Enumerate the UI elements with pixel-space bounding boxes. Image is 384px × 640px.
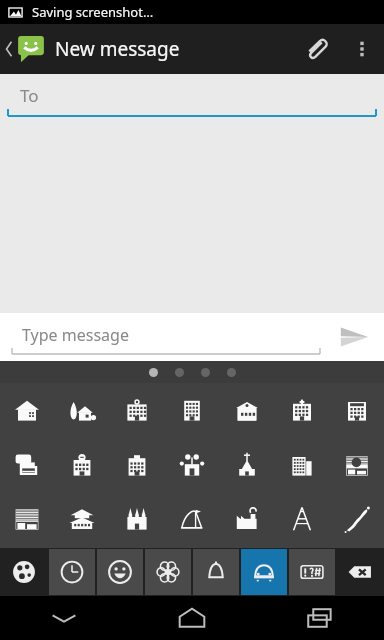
button[interactable]: Emoji 12 — [274, 440, 329, 492]
button[interactable]: Objects — [193, 549, 239, 595]
button[interactable]: Emoji 9 — [109, 440, 164, 492]
button[interactable]: Emoji 6 — [329, 385, 384, 437]
staticText: Type message — [22, 324, 129, 346]
button[interactable]: Emoji 4 — [219, 385, 274, 437]
button[interactable]: Emoji 11 — [219, 440, 274, 492]
button[interactable]: More options — [340, 24, 384, 74]
button[interactable]: Emoji 13 — [329, 440, 384, 492]
button[interactable]: Emoji 19 — [274, 494, 329, 546]
button[interactable]: Emoji 8 — [54, 440, 109, 492]
button[interactable]: Type message — [0, 313, 324, 361]
button[interactable]: Emoji 7 — [0, 440, 54, 492]
staticText: Saving screenshot… — [32, 3, 154, 21]
staticText: To — [20, 84, 39, 107]
button[interactable]: Emoji 3 — [164, 385, 219, 437]
button[interactable]: Back — [0, 24, 180, 74]
button[interactable]: Delete — [337, 549, 383, 595]
button[interactable]: Emoji 1 — [54, 385, 109, 437]
staticText: New message — [55, 36, 180, 62]
button[interactable]: Emoji 5 — [274, 385, 329, 437]
button[interactable]: To — [0, 74, 384, 120]
button[interactable]: Emoji 2 — [109, 385, 164, 437]
button[interactable]: Emoji 10 — [164, 440, 219, 492]
button[interactable]: Emoticons — [97, 549, 143, 595]
button[interactable]: Emoji 18 — [219, 494, 274, 546]
button[interactable]: Emoji 16 — [109, 494, 164, 546]
button[interactable]: Send — [324, 313, 384, 361]
button[interactable]: Emoji 20 — [329, 494, 384, 546]
button[interactable]: Emoji 14 — [0, 494, 54, 546]
button[interactable]: Recent — [49, 549, 95, 595]
button[interactable]: Emoji 15 — [54, 494, 109, 546]
button[interactable]: Places — [241, 549, 287, 595]
button[interactable]: Emoji 17 — [164, 494, 219, 546]
button[interactable]: Nature — [145, 549, 191, 595]
button[interactable]: Language — [1, 549, 47, 595]
button[interactable]: Hide keyboard — [0, 596, 128, 640]
other: Back — [4, 40, 14, 58]
button[interactable]: Home — [128, 596, 256, 640]
button[interactable]: Attach — [292, 24, 340, 74]
button[interactable]: Symbols — [289, 549, 335, 595]
button[interactable]: Emoji 0 — [0, 385, 54, 437]
button[interactable]: Recent apps — [256, 596, 384, 640]
